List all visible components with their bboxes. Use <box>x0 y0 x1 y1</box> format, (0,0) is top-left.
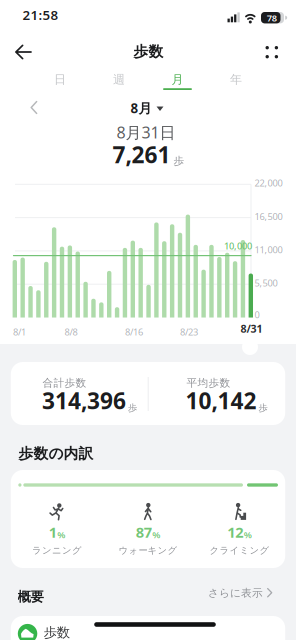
staticText: クライミング <box>209 545 269 556</box>
button[interactable]: More options <box>260 40 284 64</box>
staticText: 概要 <box>17 588 43 605</box>
button[interactable]: Show more <box>208 586 273 599</box>
staticText: 11,000 <box>254 243 282 256</box>
staticText: 5,500 <box>254 277 277 289</box>
staticText: 8/16 <box>125 326 143 338</box>
staticText: 12 <box>227 522 243 542</box>
staticText: % <box>152 528 160 541</box>
button[interactable]: Back <box>7 38 39 66</box>
staticText: % <box>244 528 252 541</box>
staticText: ランニング <box>32 545 82 556</box>
staticText: 8/1 <box>13 326 26 338</box>
button[interactable]: 日 <box>35 69 85 89</box>
button[interactable]: Select month <box>130 98 163 118</box>
staticText: 10,000 <box>224 240 252 252</box>
staticText: 8月 <box>130 99 151 117</box>
button[interactable]: 週 <box>94 69 144 89</box>
staticText: 21:58 <box>22 6 58 24</box>
button[interactable]: 月 <box>152 69 202 89</box>
staticText: 歩 <box>128 402 137 414</box>
staticText: 314,396 <box>42 385 126 416</box>
staticText: % <box>57 528 65 541</box>
staticText: 87 <box>136 522 152 542</box>
staticText: 合計歩数 <box>42 376 86 390</box>
staticText: さらに表示 <box>208 586 263 599</box>
staticText: 平均歩数 <box>186 376 230 390</box>
staticText: 10,142 <box>185 385 256 416</box>
staticText: 1 <box>49 522 57 542</box>
staticText: 日 <box>54 72 66 87</box>
staticText: 22,000 <box>254 177 282 189</box>
staticText: 歩数の内訳 <box>18 444 93 462</box>
staticText: 16,500 <box>254 210 282 222</box>
button[interactable]: 年 <box>211 69 261 89</box>
staticText: 歩数 <box>44 624 70 640</box>
staticText: 8/23 <box>180 326 198 338</box>
staticText: 78 <box>267 12 277 24</box>
staticText: 週 <box>113 72 125 87</box>
staticText: 年 <box>230 72 242 87</box>
staticText: 7,261 <box>112 139 170 169</box>
staticText: 8月31日 <box>116 122 175 143</box>
staticText: 月 <box>171 72 183 87</box>
staticText: 8/8 <box>64 326 77 338</box>
staticText: 歩数 <box>133 42 163 60</box>
button[interactable]: Steps summary <box>11 616 285 640</box>
button[interactable]: Previous month <box>21 94 47 120</box>
staticText: 歩 <box>173 154 184 167</box>
staticText: 0 <box>254 308 259 321</box>
staticText: 8/31 <box>240 321 262 336</box>
staticText: ウォーキング <box>118 545 177 556</box>
staticText: 歩 <box>258 402 267 414</box>
